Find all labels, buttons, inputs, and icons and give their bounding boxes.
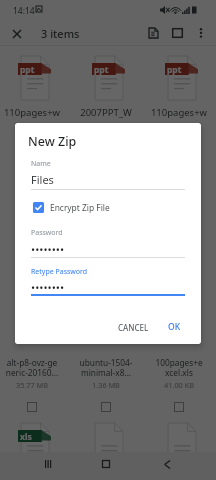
button[interactable]: Home	[94, 452, 118, 476]
button[interactable]: Close	[5, 22, 29, 46]
button[interactable]: 100pages+e xcel.xls	[143, 358, 215, 416]
staticText: 100pages+e xcel.xls	[143, 357, 215, 379]
staticText: ppt	[94, 64, 109, 76]
staticText: 3 items	[41, 26, 80, 41]
staticText: ••••••••	[31, 280, 65, 295]
staticText: 110pages+w	[0, 106, 68, 119]
staticText: 35.77 MB	[0, 380, 68, 390]
staticText: Files	[31, 172, 54, 187]
staticText: ppt	[20, 64, 35, 76]
staticText: xls	[20, 431, 32, 443]
button[interactable]	[165, 423, 198, 467]
staticText: Name	[31, 159, 51, 169]
staticText: New Zip	[28, 133, 77, 150]
staticText: 1.36 MB	[70, 380, 142, 390]
staticText: Encrypt Zip File	[50, 202, 110, 213]
button[interactable]: CANCEL	[112, 317, 155, 338]
button[interactable]: ppt	[70, 50, 142, 120]
button[interactable]: Select all	[165, 20, 190, 46]
staticText: alt-p8-ovz-ge neric-20160...	[0, 357, 68, 379]
staticText: 14:14	[13, 5, 35, 17]
button[interactable]: xls	[18, 423, 51, 467]
button[interactable]: ppt	[0, 50, 68, 120]
staticText: 41.00 KB	[143, 380, 215, 390]
button[interactable]: ubuntu-1504- minimal-x8...	[70, 358, 142, 416]
staticText: ••••••••	[31, 242, 65, 257]
button[interactable]: Recent apps	[36, 452, 60, 476]
button[interactable]: Create new file	[141, 20, 166, 46]
button[interactable]: More options	[190, 20, 211, 46]
staticText: OK	[168, 321, 181, 333]
staticText: CANCEL	[118, 322, 149, 333]
button[interactable]: alt-p8-ovz-ge neric-20160...	[0, 358, 68, 416]
button[interactable]: OK	[162, 316, 187, 338]
staticText: ppt	[167, 64, 182, 76]
button[interactable]: ppt	[143, 50, 215, 120]
button[interactable]: Encrypt Zip File	[33, 202, 110, 213]
staticText: Retype Password	[31, 267, 88, 277]
staticText: 2007PPT_W	[70, 106, 142, 119]
button[interactable]: Back	[155, 452, 179, 476]
staticText: ubuntu-1504- minimal-x8...	[70, 357, 142, 379]
button[interactable]	[92, 423, 125, 467]
staticText: Password	[31, 228, 63, 238]
staticText: 110pages+w	[143, 106, 215, 119]
